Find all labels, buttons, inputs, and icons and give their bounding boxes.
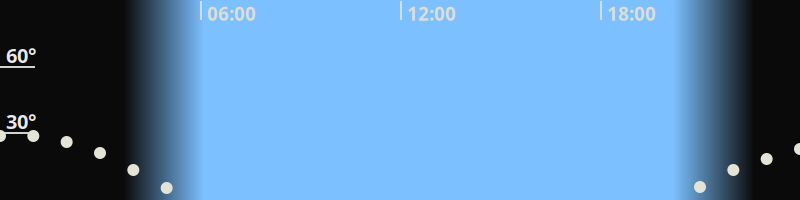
staticText: 30° <box>6 108 36 135</box>
staticText: 18:00 <box>607 1 656 26</box>
staticText: 60° <box>6 42 36 69</box>
staticText: 12:00 <box>407 1 456 26</box>
staticText: 06:00 <box>207 1 256 26</box>
